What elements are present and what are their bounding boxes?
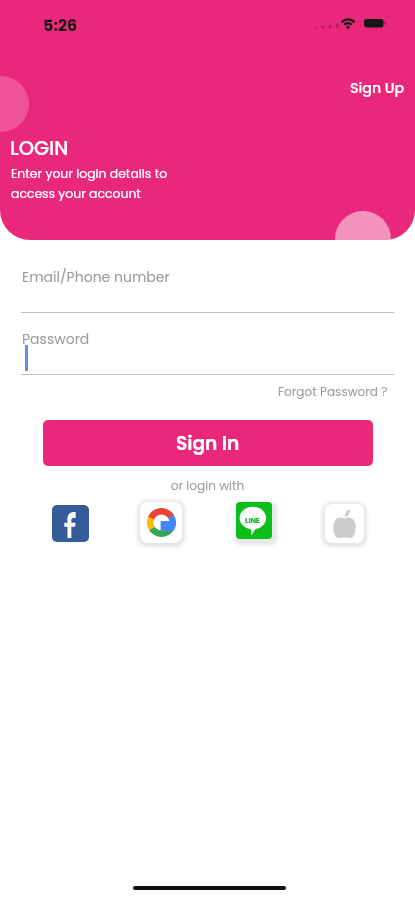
button[interactable]: Sign in with LINE (236, 502, 272, 539)
staticText: Enter your login details to access your … (11, 165, 168, 202)
staticText: Email/Phone number (22, 267, 170, 287)
staticText: Sign In (176, 430, 240, 456)
button[interactable]: Sign In (43, 420, 373, 466)
staticText: 5:26 (43, 14, 78, 36)
staticText: Forgot Password ? (278, 383, 388, 400)
button[interactable]: Forgot Password ? (272, 377, 394, 406)
staticText: LINE (245, 515, 260, 525)
staticText: or login with (0, 477, 415, 494)
button[interactable]: Sign Up (344, 73, 411, 103)
button[interactable]: Sign in with Google (140, 502, 182, 543)
button[interactable]: Sign in with Apple (325, 504, 364, 543)
staticText: Sign Up (350, 78, 405, 98)
button[interactable]: Sign in with Facebook (52, 505, 89, 542)
staticText: Password (22, 329, 90, 349)
staticText: LOGIN (10, 135, 69, 162)
